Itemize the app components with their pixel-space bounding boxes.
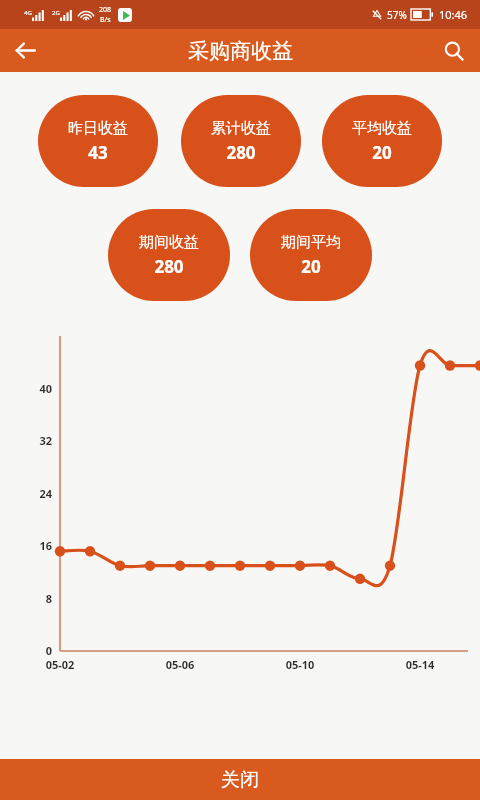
staticText: 累计收益 (211, 119, 271, 138)
staticText: B/s (100, 15, 111, 25)
staticText: 40 (26, 381, 52, 396)
staticText: 208 (99, 5, 112, 15)
staticText: 16 (26, 538, 52, 553)
button[interactable]: 昨日收益 (38, 95, 158, 187)
staticText: 采购商收益 (188, 38, 293, 64)
staticText: 280 (154, 255, 184, 278)
staticText: 4G (24, 9, 32, 17)
staticText: 24 (26, 486, 52, 501)
staticText: 平均收益 (352, 119, 412, 138)
staticText: 32 (26, 433, 52, 448)
button[interactable]: 期间平均 (250, 209, 372, 301)
staticText: 43 (88, 141, 108, 164)
staticText: 期间收益 (139, 233, 199, 252)
staticText: 57% (387, 8, 407, 22)
staticText: 关闭 (221, 768, 259, 792)
staticText: 10:46 (439, 7, 468, 22)
staticText: 2G (52, 9, 60, 17)
staticText: 昨日收益 (68, 119, 128, 138)
staticText: 05-06 (150, 657, 210, 672)
button[interactable]: 期间收益 (108, 209, 230, 301)
staticText: 期间平均 (281, 233, 341, 252)
staticText: 0 (26, 643, 52, 658)
staticText: 05-14 (390, 657, 450, 672)
button[interactable]: 平均收益 (322, 95, 442, 187)
staticText: 05-02 (30, 657, 90, 672)
button[interactable]: 累计收益 (181, 95, 301, 187)
staticText: 20 (301, 255, 321, 278)
button[interactable]: Search (428, 29, 480, 72)
staticText: 280 (226, 141, 256, 164)
staticText: 20 (372, 141, 392, 164)
staticText: 05-10 (270, 657, 330, 672)
button[interactable]: Back (0, 29, 50, 72)
staticText: 8 (26, 591, 52, 606)
button[interactable]: 关闭 (0, 759, 480, 800)
